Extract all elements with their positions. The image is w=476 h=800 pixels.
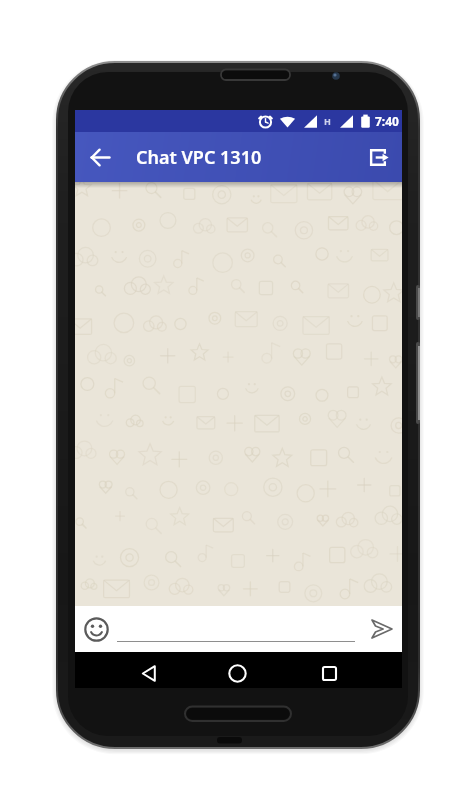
button[interactable] [134,663,163,684]
staticText: Chat VPC 1310 [136,145,262,170]
button[interactable] [356,132,402,182]
staticText: 7:40 [375,113,399,129]
button[interactable] [315,663,344,684]
button[interactable] [117,606,356,652]
button[interactable] [75,132,125,182]
button[interactable] [362,606,402,652]
button[interactable] [223,663,252,684]
staticText: H [324,115,331,127]
button[interactable] [75,606,117,652]
